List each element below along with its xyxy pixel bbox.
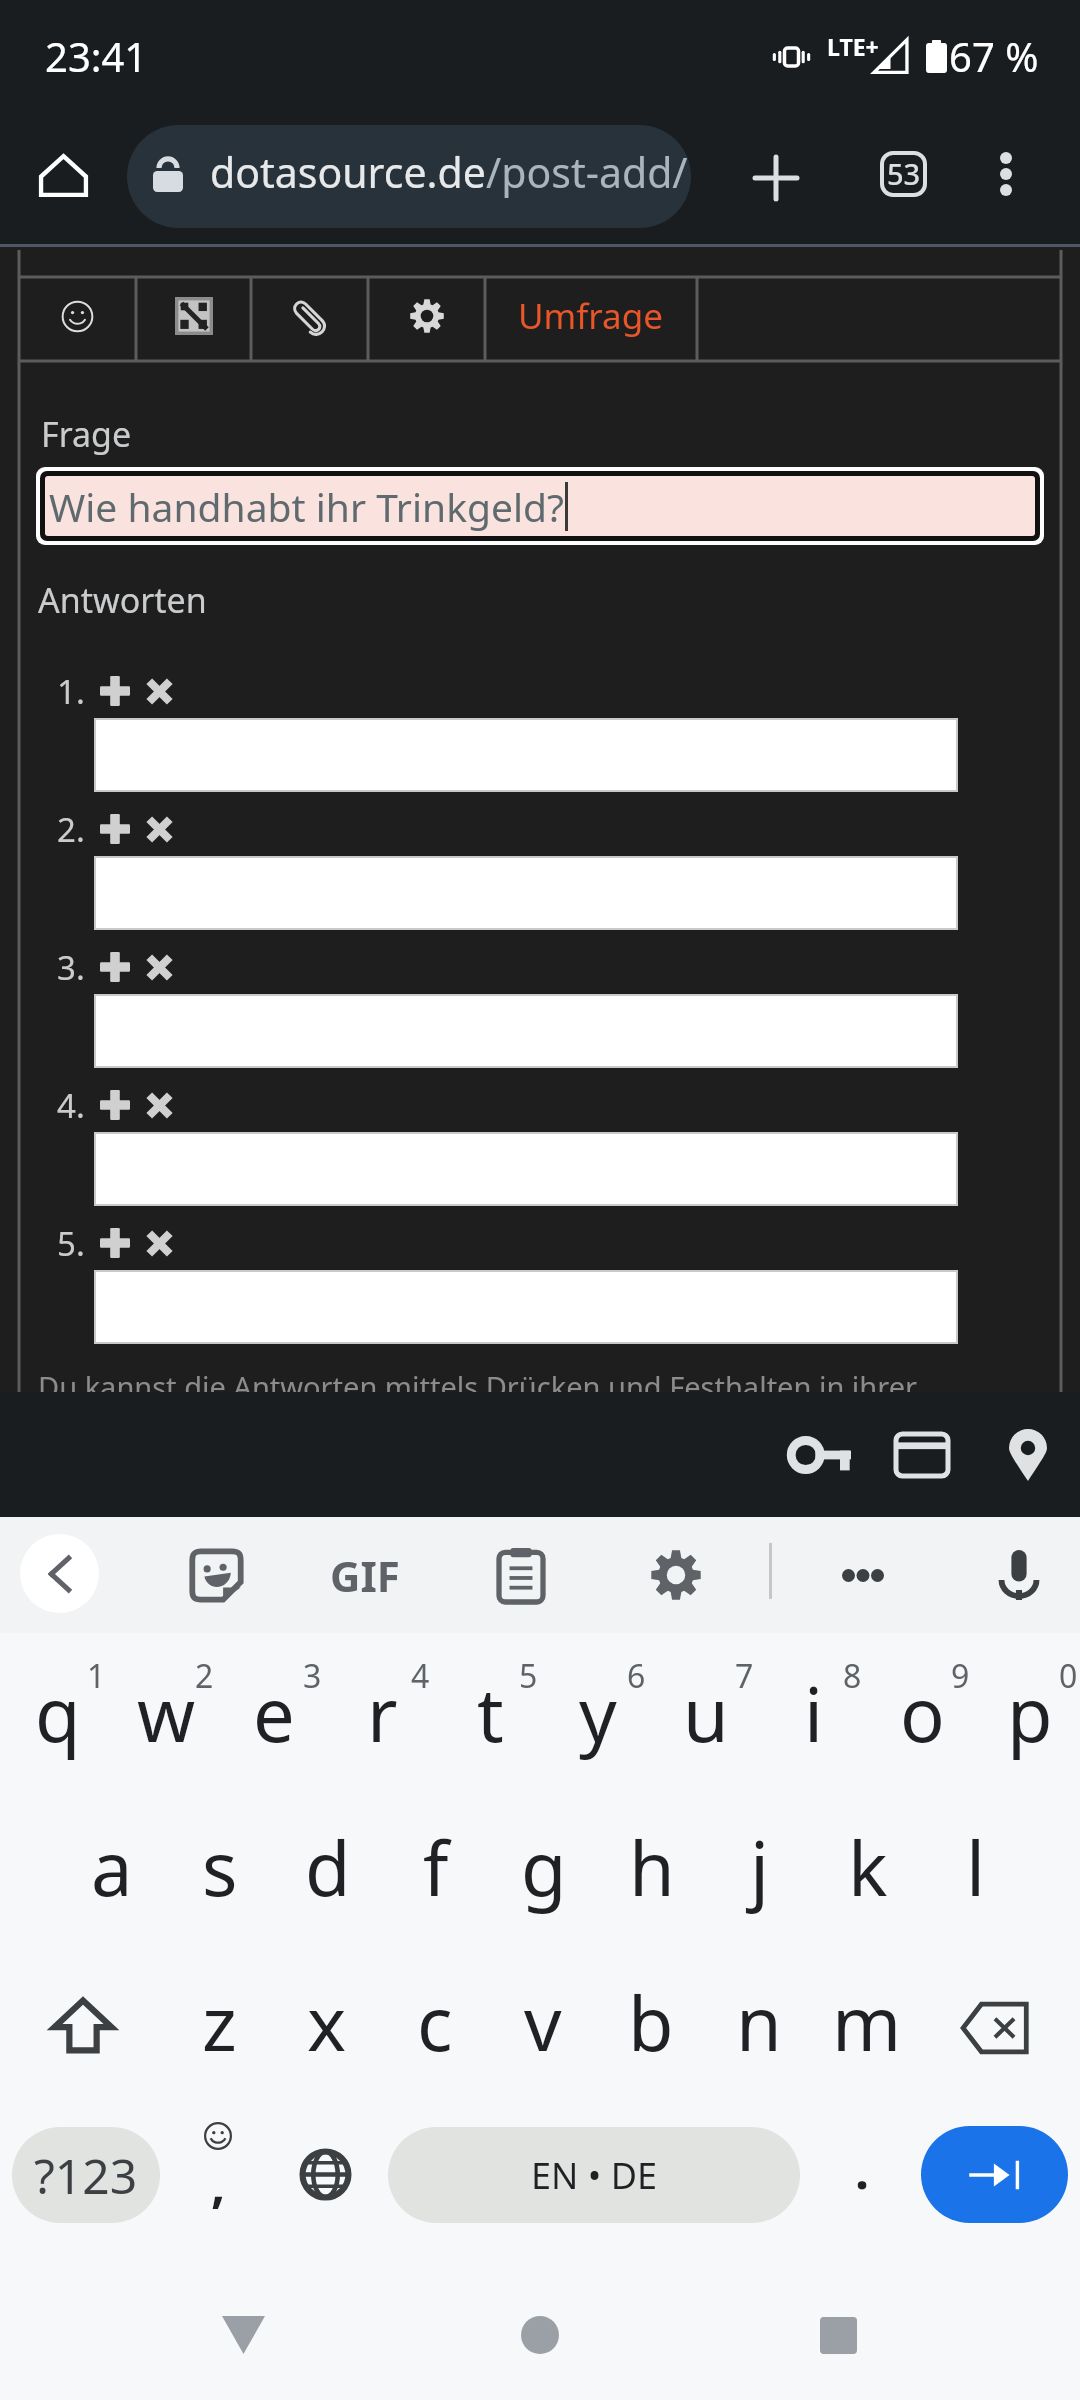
button[interactable]: s xyxy=(162,1788,270,1943)
button[interactable]: Remove answer xyxy=(139,671,179,711)
button[interactable]: 6 xyxy=(540,1633,648,1788)
button[interactable]: More xyxy=(807,1517,919,1633)
staticText: Umfrage xyxy=(518,292,664,340)
button[interactable]: Emoji xyxy=(19,274,136,358)
staticText: 9 xyxy=(951,1654,970,1698)
button[interactable]: l xyxy=(918,1788,1026,1943)
button[interactable]: m xyxy=(810,1943,918,2098)
staticText: 5. xyxy=(57,1221,85,1266)
button[interactable]: Recents xyxy=(783,2282,893,2400)
button[interactable]: Home xyxy=(485,2282,595,2400)
button[interactable]: 9 xyxy=(864,1633,972,1788)
button[interactable]: EN • DE xyxy=(388,2127,800,2223)
button[interactable]: n xyxy=(702,1943,810,2098)
staticText: w xyxy=(137,1663,196,1764)
button[interactable]: Settings xyxy=(368,274,485,358)
staticText: v xyxy=(524,1972,562,2073)
button[interactable]: Remove answer xyxy=(139,1223,179,1263)
button[interactable]: j xyxy=(702,1788,810,1943)
button[interactable]: Add answer xyxy=(95,1223,135,1263)
button[interactable]: More options xyxy=(964,110,1080,247)
button[interactable]: Back xyxy=(20,1534,99,1613)
button[interactable]: c xyxy=(378,1943,486,2098)
button[interactable]: Keyboard settings xyxy=(620,1517,732,1633)
button[interactable]: 0 xyxy=(972,1633,1080,1788)
button[interactable]: x xyxy=(270,1943,378,2098)
button[interactable]: dotasource.de xyxy=(127,125,691,228)
button[interactable]: Home xyxy=(0,110,137,247)
button[interactable]: Tabs, 53 open xyxy=(838,110,964,247)
button[interactable]: Image xyxy=(136,274,251,358)
staticText: Frage xyxy=(41,411,132,457)
staticText: GIF xyxy=(330,1547,400,1604)
button[interactable]: a xyxy=(54,1788,162,1943)
staticText: Antworten xyxy=(38,577,207,623)
button[interactable]: Voice input xyxy=(963,1517,1075,1633)
button[interactable]: Add answer xyxy=(95,1085,135,1125)
button[interactable]: Remove answer xyxy=(139,809,179,849)
staticText: 3. xyxy=(57,945,85,990)
button[interactable]: Passwords xyxy=(770,1392,870,1517)
button[interactable]: Umfrage xyxy=(485,274,697,358)
staticText: q xyxy=(35,1663,81,1764)
staticText: s xyxy=(202,1817,238,1918)
staticText: p xyxy=(1007,1663,1053,1764)
button[interactable]: k xyxy=(810,1788,918,1943)
button[interactable]: 7 xyxy=(648,1633,756,1788)
staticText: 5 xyxy=(519,1654,538,1698)
staticText: d xyxy=(305,1817,351,1918)
button[interactable]: Wie handhabt ihr Trinkgeld? xyxy=(45,476,1035,536)
button[interactable]: Clipboard xyxy=(465,1517,577,1633)
button[interactable]: 8 xyxy=(756,1633,864,1788)
button[interactable]: Stickers xyxy=(160,1517,272,1633)
button[interactable]: 4 xyxy=(324,1633,432,1788)
button[interactable]: . xyxy=(812,2098,912,2253)
staticText: ?123 xyxy=(34,2143,138,2208)
staticText: 0 xyxy=(1059,1654,1078,1698)
button[interactable]: Add answer xyxy=(95,947,135,987)
button[interactable]: Remove answer xyxy=(139,947,179,987)
button[interactable]: Add answer xyxy=(95,809,135,849)
button[interactable]: Emoji and comma xyxy=(168,2098,268,2253)
button[interactable]: Remove answer xyxy=(139,1085,179,1125)
button[interactable]: Backspace xyxy=(918,1943,1080,2098)
staticText: , xyxy=(211,2150,226,2218)
button[interactable]: Change language xyxy=(272,2098,380,2253)
button[interactable]: ?123 xyxy=(12,2127,160,2223)
staticText: h xyxy=(629,1817,675,1918)
button[interactable]: Addresses xyxy=(978,1392,1078,1517)
staticText: n xyxy=(736,1972,782,2073)
staticText: 67 % xyxy=(949,29,1039,83)
button[interactable]: h xyxy=(594,1788,702,1943)
button[interactable]: 3 xyxy=(216,1633,324,1788)
button[interactable]: z xyxy=(162,1943,270,2098)
button[interactable]: 5 xyxy=(432,1633,540,1788)
button[interactable]: f xyxy=(378,1788,486,1943)
button[interactable]: Back xyxy=(188,2282,298,2400)
button[interactable]: New tab xyxy=(712,110,838,247)
staticText: . xyxy=(855,2136,870,2204)
button[interactable]: 1 xyxy=(0,1633,108,1788)
staticText: 2. xyxy=(57,807,85,852)
button[interactable]: Shift xyxy=(0,1943,162,2098)
button[interactable]: g xyxy=(486,1788,594,1943)
button[interactable]: v xyxy=(486,1943,594,2098)
button[interactable]: Next xyxy=(921,2126,1068,2223)
button[interactable]: GIF xyxy=(309,1517,421,1633)
staticText: m xyxy=(832,1972,902,2073)
staticText: 1 xyxy=(87,1654,106,1698)
staticText: t xyxy=(477,1663,504,1764)
staticText: c xyxy=(417,1972,453,2073)
button[interactable]: Add answer xyxy=(95,671,135,711)
button[interactable]: Payment methods xyxy=(872,1392,972,1517)
button[interactable]: 2 xyxy=(108,1633,216,1788)
staticText: /post-add/ xyxy=(486,144,688,200)
button[interactable]: d xyxy=(270,1788,378,1943)
button[interactable]: Attachment xyxy=(251,274,368,358)
button[interactable]: b xyxy=(594,1943,702,2098)
